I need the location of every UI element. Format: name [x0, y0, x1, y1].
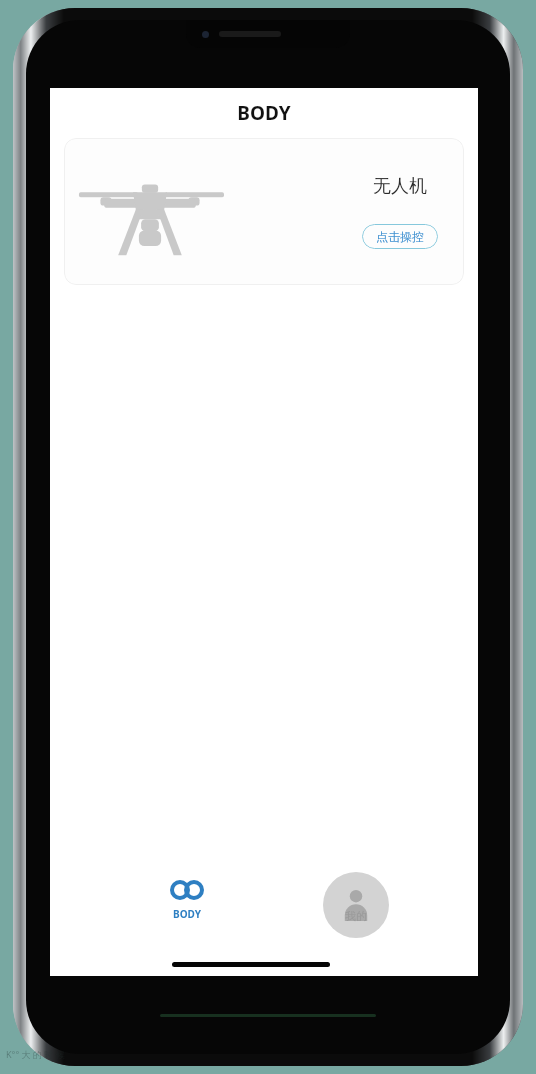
- staticText: 无人机: [373, 175, 427, 198]
- button[interactable]: 我的: [323, 872, 389, 938]
- staticText: BODY: [173, 907, 202, 921]
- staticText: 点击操控: [376, 229, 424, 244]
- staticText: BODY: [237, 100, 291, 126]
- staticText: K°° 大 的 时 候: [6, 1048, 65, 1060]
- button[interactable]: 点击操控: [362, 224, 438, 249]
- button[interactable]: BODY: [139, 872, 235, 921]
- button[interactable]: 无人机: [64, 138, 464, 285]
- staticText: 我的: [345, 909, 367, 923]
